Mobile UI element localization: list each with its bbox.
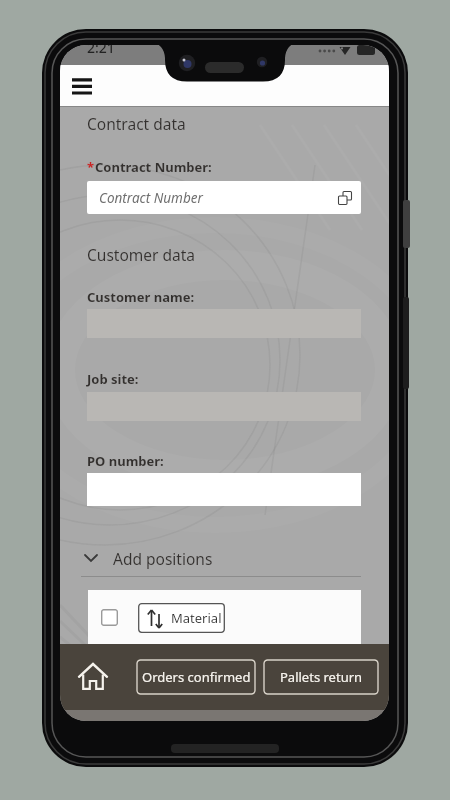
button[interactable]: Orders confirmed [136, 659, 256, 695]
staticText: 2:21 [87, 45, 115, 57]
staticText: Material [171, 609, 222, 627]
staticText: Job site: [87, 370, 139, 388]
button[interactable]: Contract Number [87, 181, 361, 214]
button[interactable] [101, 609, 118, 626]
button[interactable]: Material [138, 603, 225, 633]
staticText: Orders confirmed [142, 668, 251, 686]
staticText: PO number: [87, 452, 164, 470]
staticText: Contract Number: [95, 158, 212, 176]
button[interactable] [77, 661, 109, 693]
staticText: Customer data [87, 244, 195, 265]
staticText: Contract Number [99, 189, 203, 207]
button[interactable]: Add positions [84, 545, 213, 571]
staticText: Contract data [87, 113, 186, 134]
staticText: Customer name: [87, 288, 195, 306]
staticText: Add positions [113, 548, 213, 569]
staticText: * [87, 158, 95, 176]
button[interactable]: Pallets return [263, 659, 379, 695]
staticText: Pallets return [280, 668, 363, 686]
button[interactable] [66, 70, 98, 102]
